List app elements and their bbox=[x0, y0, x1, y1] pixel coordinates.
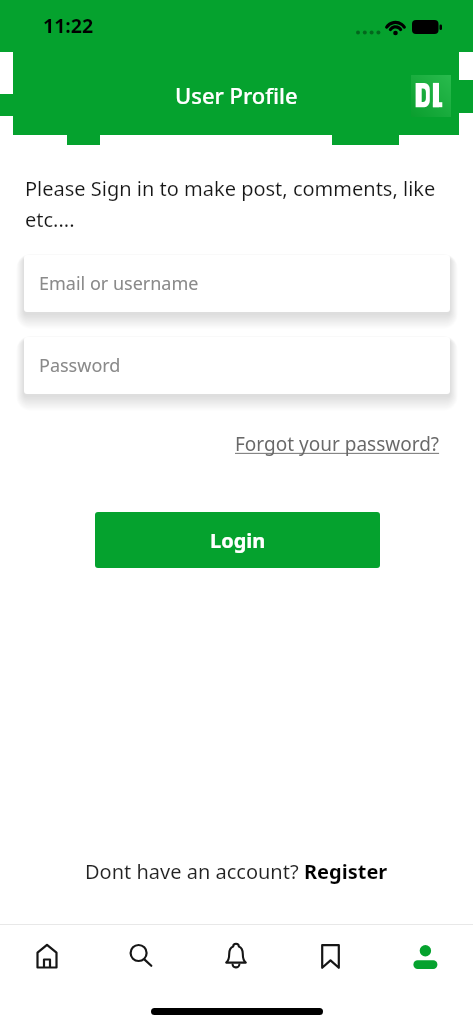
button[interactable]: Login bbox=[95, 512, 380, 568]
staticText: Password bbox=[39, 353, 121, 378]
staticText: Please Sign in to make post, comments, l… bbox=[25, 175, 436, 232]
staticText: 11:22 bbox=[43, 12, 94, 39]
button[interactable] bbox=[283, 925, 378, 987]
button[interactable] bbox=[94, 925, 188, 987]
staticText: Email or username bbox=[39, 271, 199, 296]
button[interactable]: Forgot your password? bbox=[235, 431, 440, 457]
button[interactable]: Password bbox=[24, 337, 450, 394]
button[interactable] bbox=[188, 925, 283, 987]
button[interactable]: Register bbox=[304, 858, 388, 885]
staticText: Login bbox=[210, 527, 266, 554]
staticText: Dont have an account? bbox=[85, 858, 304, 885]
button[interactable] bbox=[378, 925, 473, 987]
staticText: User Profile bbox=[175, 80, 298, 110]
button[interactable]: Email or username bbox=[24, 255, 450, 312]
button[interactable] bbox=[0, 925, 94, 987]
